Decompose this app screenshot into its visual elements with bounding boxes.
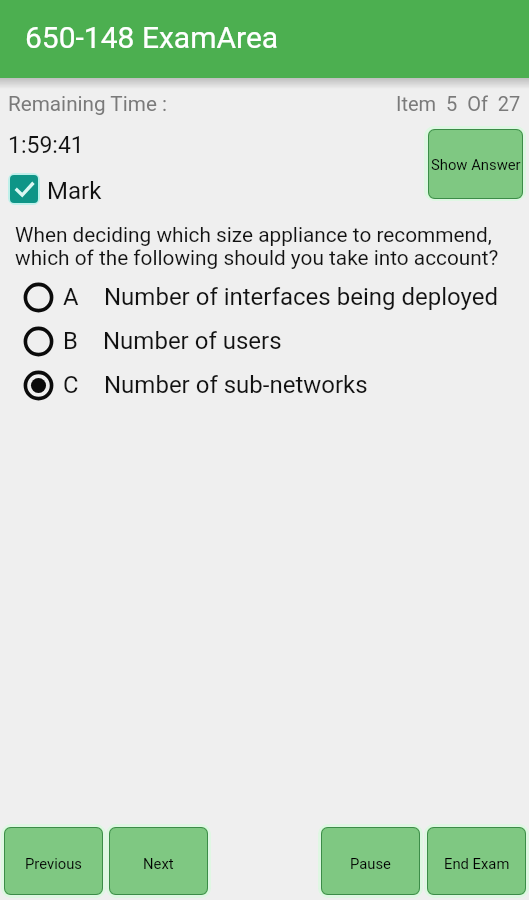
staticText: Item 5 Of 27 — [396, 92, 521, 115]
button[interactable]: Selected option C — [0, 363, 529, 407]
staticText: C — [63, 371, 79, 399]
staticText: End Exam — [444, 855, 510, 872]
staticText: B — [63, 327, 78, 355]
staticText: Number of users — [103, 327, 282, 355]
other: Selected option C — [23, 370, 54, 401]
button[interactable]: Pause — [318, 824, 423, 898]
button[interactable]: Next — [106, 824, 211, 898]
staticText: A — [63, 283, 79, 311]
staticText: Show Answer — [431, 156, 521, 173]
staticText: Next — [143, 855, 174, 872]
staticText: Previous — [25, 855, 82, 872]
staticText: Pause — [350, 855, 391, 872]
other: Option A — [23, 282, 54, 313]
button[interactable]: Option B — [0, 319, 529, 363]
button[interactable]: End Exam — [424, 824, 529, 898]
staticText: 1:59:41 — [8, 132, 84, 159]
staticText: 650-148 ExamArea — [25, 20, 279, 55]
staticText: Number of sub-networks — [104, 371, 368, 399]
other: Option B — [23, 326, 54, 357]
staticText: When deciding which size appliance to re… — [15, 223, 499, 270]
staticText: Remaining Time : — [8, 92, 167, 116]
button[interactable]: Mark — [8, 173, 102, 205]
button[interactable]: Option A — [0, 275, 529, 319]
staticText: Number of interfaces being deployed — [104, 283, 498, 311]
staticText: Mark — [47, 177, 102, 205]
button[interactable]: Show Answer — [424, 126, 526, 201]
button[interactable]: Previous — [1, 824, 106, 898]
